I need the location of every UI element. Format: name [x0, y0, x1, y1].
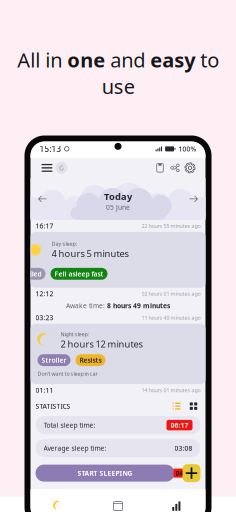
staticText: 22 hours 55 minutes ago	[141, 222, 200, 229]
staticText: 14 hours 01 minutes ago	[141, 387, 200, 394]
button[interactable]: Previous day	[35, 192, 49, 206]
button[interactable]: Menu	[38, 159, 55, 176]
staticText: G	[59, 163, 64, 172]
staticText: 02 hours 01 minutes ago	[141, 290, 200, 297]
staticText: 03:08	[174, 444, 192, 453]
staticText: 2 hours 12 minutes	[60, 338, 142, 350]
staticText: 04	[175, 469, 183, 478]
button[interactable]: Notes	[152, 160, 167, 175]
staticText: Fell asleep fast	[54, 269, 103, 278]
staticText: Day sleep:	[51, 240, 76, 247]
button[interactable]: Sleep	[30, 501, 89, 512]
staticText: 01:11	[35, 386, 53, 395]
button[interactable]: Add entry	[182, 464, 200, 482]
button[interactable]: START SLEEPING	[35, 465, 174, 482]
button[interactable]: Profile	[55, 162, 67, 174]
staticText: START SLEEPING	[77, 469, 132, 478]
staticText: Resists	[79, 356, 101, 365]
button[interactable]: List view	[169, 399, 183, 413]
staticText: 05 June	[106, 203, 130, 211]
staticText: Bed	[29, 269, 41, 278]
button[interactable]: Grid view	[186, 399, 200, 413]
staticText: 06:17	[170, 421, 188, 430]
staticText: Awake time:	[66, 301, 107, 310]
button[interactable]: Settings	[182, 160, 197, 175]
staticText: 16:17	[35, 221, 53, 230]
staticText: 12:12	[35, 289, 53, 298]
button[interactable]: Next day	[186, 192, 200, 206]
staticText: 03:23	[35, 313, 53, 322]
staticText: Total sleep time:	[43, 421, 95, 430]
button[interactable]: Calendar	[89, 501, 147, 512]
staticText: Average sleep time:	[43, 444, 106, 453]
staticText: STATISTICS	[35, 402, 70, 411]
staticText: Don't want to sleep in car	[37, 370, 97, 377]
staticText: 11 hours 49 minutes ago	[141, 314, 200, 321]
button[interactable]: Share	[167, 160, 182, 175]
staticText: 8 hours 49 minutes	[107, 301, 170, 310]
staticText: 100%	[178, 144, 196, 153]
button[interactable]: Statistics	[147, 501, 205, 512]
staticText: Today	[104, 190, 132, 203]
staticText: Night sleep:	[60, 331, 88, 338]
staticText: 4 hours 5 minutes	[51, 247, 128, 260]
staticText: All in one and easy to use	[17, 46, 219, 100]
staticText: 15:13	[39, 144, 61, 154]
staticText: Stroller	[41, 356, 66, 365]
